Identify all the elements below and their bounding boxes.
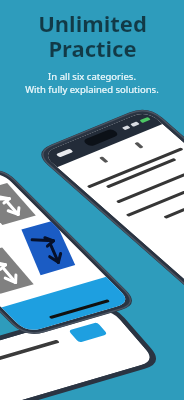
- staticText: Unlimited Practice: [38, 8, 147, 63]
- staticText: In all six categories. With fully explai…: [25, 70, 159, 96]
